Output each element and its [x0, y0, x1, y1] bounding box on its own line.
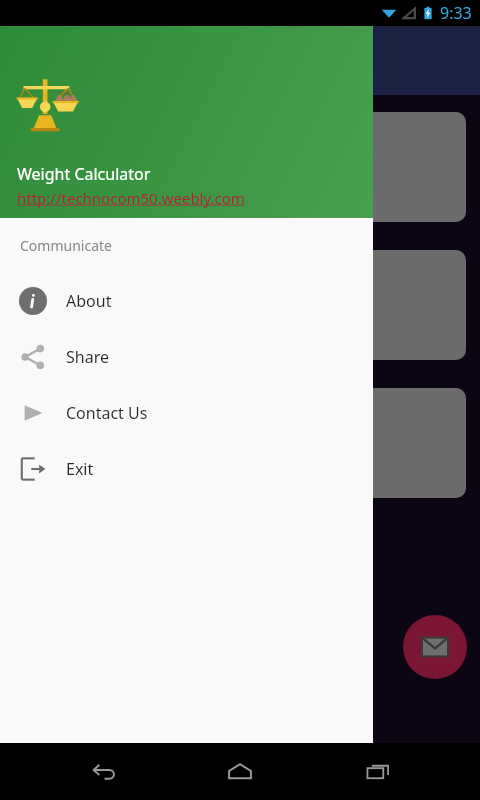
- button[interactable]: Share: [0, 329, 373, 385]
- button[interactable]: BLOCK HOLE: [14, 112, 466, 222]
- button[interactable]: Recent apps: [343, 743, 413, 800]
- staticText: Exit: [66, 458, 94, 480]
- button[interactable]: RECT. HOLE: [14, 388, 466, 498]
- staticText: BLOCK HOLE: [193, 188, 287, 208]
- button[interactable]: Send email: [403, 615, 467, 679]
- staticText: Communicate: [20, 236, 112, 255]
- button[interactable]: Weight Calculator: [0, 26, 373, 218]
- staticText: About: [66, 290, 112, 312]
- staticText: Share: [66, 346, 109, 368]
- button[interactable]: About: [0, 273, 373, 329]
- button[interactable]: Contact Us: [0, 385, 373, 441]
- staticText: 9:33: [440, 2, 472, 24]
- staticText: http://technocom50.weebly.com: [17, 188, 245, 208]
- button[interactable]: Exit: [0, 441, 373, 497]
- staticText: Contact Us: [66, 402, 148, 424]
- staticText: Weight Calculator: [17, 163, 151, 185]
- button[interactable]: Home: [205, 743, 275, 800]
- button[interactable]: Back: [68, 743, 138, 800]
- button[interactable]: HEXAGON: [14, 250, 466, 360]
